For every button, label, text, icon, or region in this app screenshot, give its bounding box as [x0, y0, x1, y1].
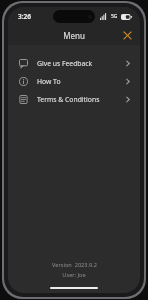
button[interactable]: Give us Feedback [8, 54, 140, 72]
staticText: Terms & Conditions [37, 95, 100, 104]
staticText: Give us Feedback [37, 59, 93, 68]
staticText: Menu [63, 30, 85, 41]
button[interactable]: How To [8, 72, 140, 90]
staticText: Version 2023.9.2 [52, 261, 97, 269]
staticText: User: Joe [62, 271, 86, 279]
button[interactable]: Close [119, 27, 135, 43]
staticText: 5G [111, 13, 118, 20]
staticText: 3:26 [18, 12, 31, 21]
button[interactable]: Terms & Conditions [8, 90, 140, 108]
staticText: How To [37, 77, 61, 86]
